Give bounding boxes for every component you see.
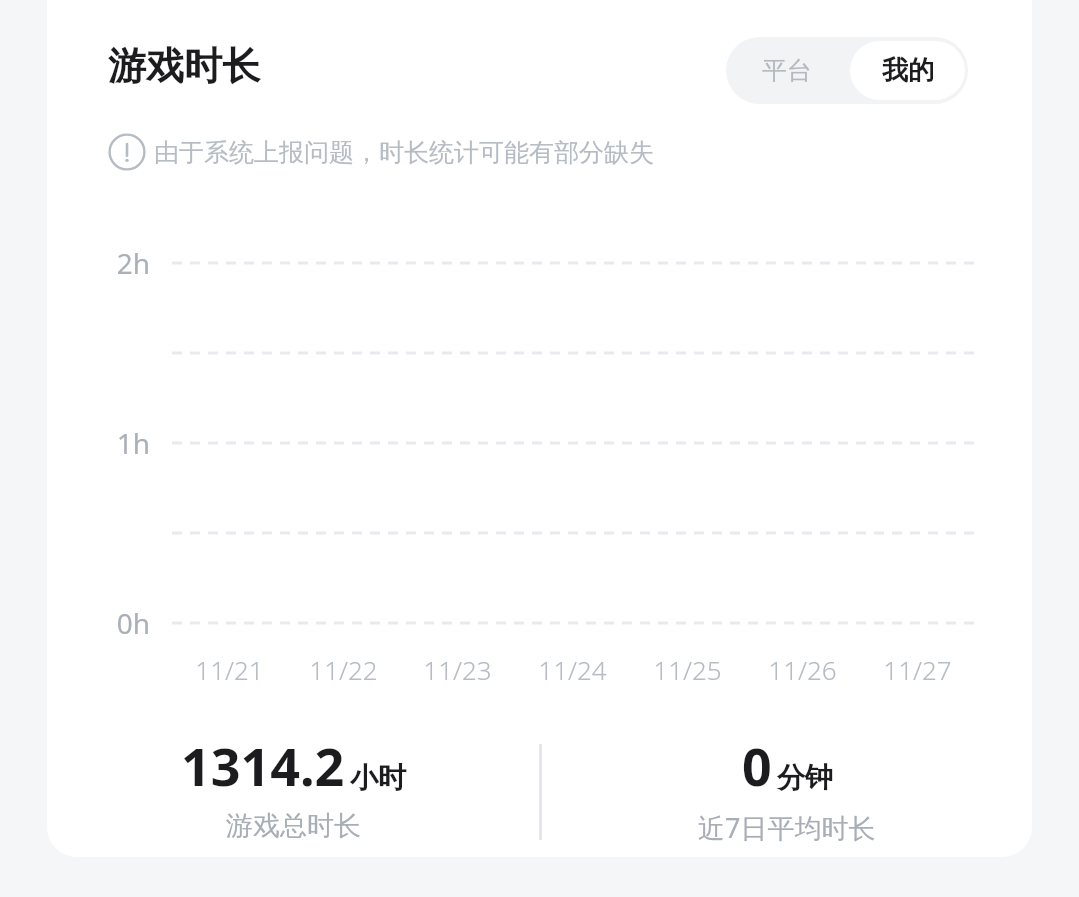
staticText: 2h — [116, 244, 150, 282]
staticText: 11/23 — [423, 652, 492, 687]
staticText: 游戏时长 — [108, 42, 260, 90]
staticText: 11/27 — [883, 652, 952, 687]
staticText: 11/26 — [768, 652, 837, 687]
staticText: 由于系统上报问题，时长统计可能有部分缺失 — [154, 137, 654, 168]
staticText: 我的 — [882, 54, 934, 87]
other: Warning — [108, 133, 146, 171]
button[interactable]: 平台 — [726, 37, 847, 104]
button[interactable]: 0 — [542, 730, 1032, 846]
staticText: 分钟 — [777, 760, 833, 795]
button[interactable]: 我的 — [850, 41, 965, 100]
staticText: 11/21 — [195, 652, 264, 687]
staticText: 0 — [742, 730, 772, 801]
button[interactable]: 1314.2 — [47, 730, 539, 843]
staticText: 游戏总时长 — [226, 809, 361, 843]
staticText: 近7日平均时长 — [698, 809, 876, 846]
staticText: 11/24 — [538, 652, 607, 687]
staticText: 小时 — [350, 760, 406, 795]
staticText: 11/22 — [309, 652, 378, 687]
staticText: 0h — [116, 604, 150, 642]
staticText: 平台 — [762, 55, 812, 86]
staticText: 1314.2 — [181, 730, 345, 801]
staticText: 11/25 — [653, 652, 722, 687]
staticText: 1h — [116, 424, 150, 462]
